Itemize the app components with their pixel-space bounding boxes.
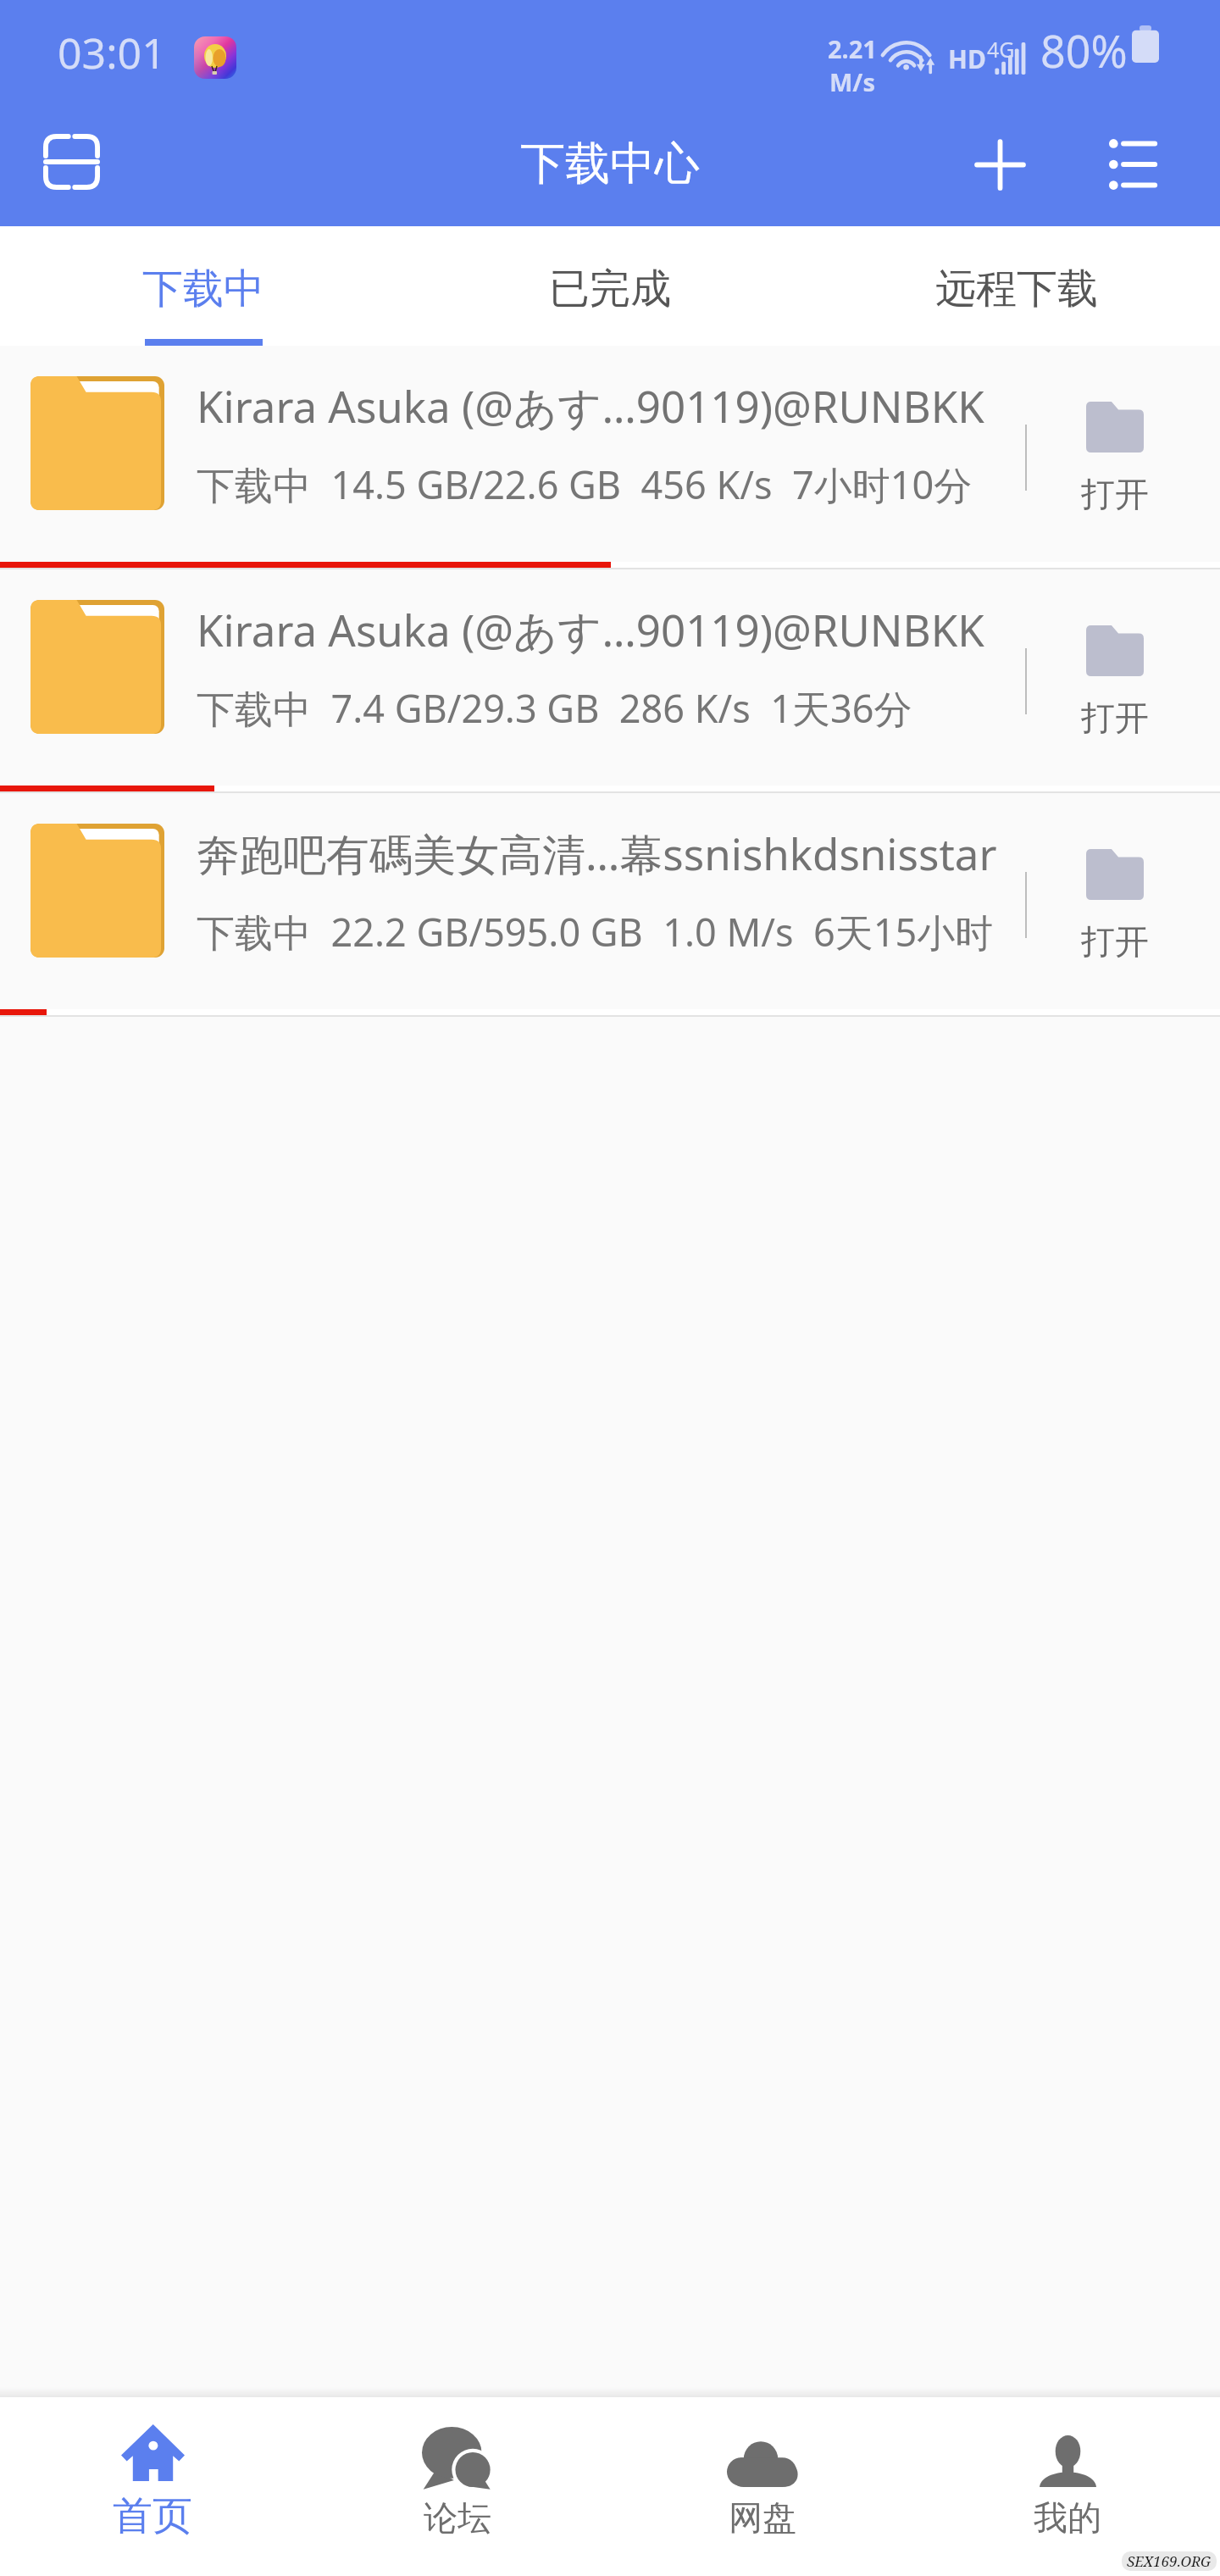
staticText: 下载中心 bbox=[520, 136, 700, 192]
button[interactable]: Kirara Asuka (@あす…90119)@RUNBKK bbox=[0, 569, 1220, 793]
button[interactable]: Open folder bbox=[1064, 402, 1166, 515]
button[interactable]: 网盘 bbox=[610, 2397, 915, 2576]
staticText: 4G bbox=[987, 35, 1015, 64]
staticText: 已完成 bbox=[549, 264, 671, 314]
button[interactable]: Add download bbox=[953, 118, 1046, 211]
staticText: 80% bbox=[1040, 20, 1128, 80]
staticText: 首页 bbox=[113, 2491, 192, 2541]
button[interactable]: 我的 bbox=[915, 2397, 1220, 2576]
staticText: 打开 bbox=[1081, 697, 1149, 739]
button[interactable]: 奔跑吧有碼美女高清…幕ssnishkdsnisstar bbox=[0, 793, 1220, 1017]
staticText: Kirara Asuka (@あす…90119)@RUNBKK bbox=[197, 600, 984, 659]
staticText: 2.21 bbox=[828, 32, 877, 65]
button[interactable]: 远程下载 bbox=[813, 226, 1220, 346]
staticText: 下载中 bbox=[142, 264, 264, 314]
staticText: 打开 bbox=[1081, 920, 1149, 963]
staticText: M/s bbox=[829, 65, 875, 98]
button[interactable]: Open folder bbox=[1064, 625, 1166, 739]
button[interactable]: Scan QR code bbox=[25, 115, 118, 208]
button[interactable]: 已完成 bbox=[407, 226, 813, 346]
staticText: HD bbox=[948, 42, 986, 76]
staticText: SEX169.ORG bbox=[1127, 2551, 1212, 2571]
staticText: 下载中 7.4 GB/29.3 GB 286 K/s 1天36分 bbox=[197, 682, 912, 734]
staticText: 论坛 bbox=[424, 2496, 491, 2539]
staticText: 03:01 bbox=[58, 24, 166, 81]
staticText: Kirara Asuka (@あす…90119)@RUNBKK bbox=[197, 376, 984, 436]
staticText: 奔跑吧有碼美女高清…幕ssnishkdsnisstar bbox=[197, 824, 997, 883]
staticText: 下载中 14.5 GB/22.6 GB 456 K/s 7小时10分 bbox=[197, 458, 973, 510]
button[interactable]: 论坛 bbox=[305, 2397, 610, 2576]
staticText: 下载中 22.2 GB/595.0 GB 1.0 M/s 6天15小时 bbox=[197, 906, 994, 958]
staticText: 网盘 bbox=[729, 2496, 796, 2539]
button[interactable]: Kirara Asuka (@あす…90119)@RUNBKK bbox=[0, 346, 1220, 569]
staticText: 打开 bbox=[1081, 473, 1149, 515]
button[interactable]: 下载中 bbox=[0, 226, 407, 346]
button[interactable]: Menu bbox=[1086, 118, 1179, 211]
staticText: 远程下载 bbox=[935, 264, 1098, 314]
button[interactable]: Open folder bbox=[1064, 849, 1166, 963]
staticText: 我的 bbox=[1034, 2496, 1101, 2539]
button[interactable]: 首页 bbox=[0, 2397, 305, 2576]
